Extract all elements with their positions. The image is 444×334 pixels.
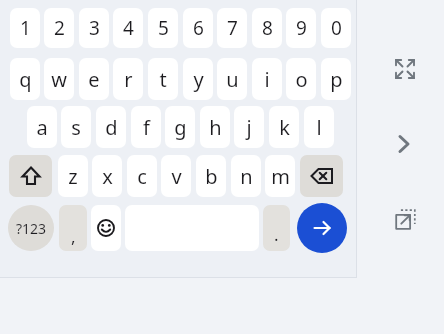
staticText: 2 — [54, 15, 65, 41]
button[interactable]: ?123 — [8, 205, 54, 251]
button[interactable]: 5 — [148, 8, 178, 48]
staticText: k — [279, 114, 290, 141]
staticText: a — [36, 114, 48, 141]
staticText: 0 — [331, 15, 342, 41]
staticText: 5 — [158, 15, 169, 41]
button[interactable]: s — [61, 106, 91, 148]
staticText: ?123 — [16, 219, 47, 238]
button[interactable]: i — [252, 58, 282, 100]
button[interactable]: 2 — [44, 8, 74, 48]
button[interactable]: 4 — [113, 8, 143, 48]
button[interactable]: w — [44, 58, 74, 100]
staticText: c — [137, 163, 147, 190]
button[interactable]: Shift — [9, 155, 52, 197]
staticText: , — [71, 225, 76, 248]
button[interactable]: , — [59, 205, 87, 251]
button[interactable]: a — [27, 106, 57, 148]
button[interactable]: n — [231, 155, 261, 197]
button[interactable]: j — [234, 106, 264, 148]
button[interactable]: 8 — [252, 8, 282, 48]
button[interactable]: z — [58, 155, 88, 197]
button[interactable]: t — [148, 58, 178, 100]
button[interactable]: g — [165, 106, 195, 148]
button[interactable]: Open in new window — [388, 202, 422, 236]
staticText: p — [330, 66, 343, 93]
staticText: 9 — [296, 15, 307, 41]
staticText: m — [271, 163, 290, 190]
staticText: b — [205, 163, 218, 190]
button[interactable]: o — [286, 58, 316, 100]
button[interactable]: k — [269, 106, 299, 148]
staticText: z — [68, 163, 78, 190]
staticText: . — [274, 223, 279, 246]
staticText: g — [174, 114, 187, 141]
button[interactable]: 3 — [79, 8, 109, 48]
button[interactable]: 7 — [217, 8, 247, 48]
button[interactable]: 6 — [183, 8, 213, 48]
button[interactable]: f — [131, 106, 161, 148]
staticText: q — [19, 66, 32, 93]
staticText: y — [193, 66, 204, 93]
button[interactable]: q — [10, 58, 40, 100]
button[interactable]: Expand — [388, 52, 422, 86]
staticText: 6 — [193, 15, 204, 41]
staticText: 4 — [123, 15, 134, 41]
button[interactable]: Emoji — [91, 205, 121, 251]
button[interactable]: x — [92, 155, 122, 197]
button[interactable]: m — [265, 155, 295, 197]
button[interactable]: e — [79, 58, 109, 100]
button[interactable]: r — [113, 58, 143, 100]
staticText: s — [71, 114, 81, 141]
button[interactable]: v — [161, 155, 191, 197]
button[interactable]: b — [196, 155, 226, 197]
button[interactable]: 1 — [10, 8, 40, 48]
staticText: j — [246, 114, 252, 141]
staticText: 8 — [262, 15, 273, 41]
button[interactable]: c — [127, 155, 157, 197]
staticText: r — [124, 66, 133, 93]
staticText: l — [316, 114, 322, 141]
button[interactable]: Backspace — [300, 155, 343, 197]
staticText: 3 — [89, 15, 100, 41]
staticText: 7 — [227, 15, 238, 41]
button[interactable]: 0 — [321, 8, 351, 48]
button[interactable]: d — [96, 106, 126, 148]
staticText: i — [264, 66, 270, 93]
staticText: u — [226, 66, 239, 93]
button[interactable]: h — [200, 106, 230, 148]
button[interactable]: Next — [388, 127, 422, 161]
staticText: 1 — [20, 15, 31, 41]
button[interactable]: l — [304, 106, 334, 148]
staticText: h — [209, 114, 222, 141]
button[interactable]: p — [321, 58, 351, 100]
staticText: w — [51, 66, 67, 93]
button[interactable]: . — [263, 205, 290, 251]
staticText: t — [159, 66, 167, 93]
staticText: v — [171, 163, 182, 190]
button[interactable]: y — [183, 58, 213, 100]
staticText: n — [240, 163, 253, 190]
button[interactable]: Enter — [297, 203, 347, 253]
staticText: o — [295, 66, 308, 93]
button[interactable]: u — [217, 58, 247, 100]
staticText: e — [88, 66, 100, 93]
staticText: f — [143, 114, 150, 141]
staticText: d — [105, 114, 118, 141]
staticText: x — [102, 163, 113, 190]
button[interactable]: 9 — [286, 8, 316, 48]
